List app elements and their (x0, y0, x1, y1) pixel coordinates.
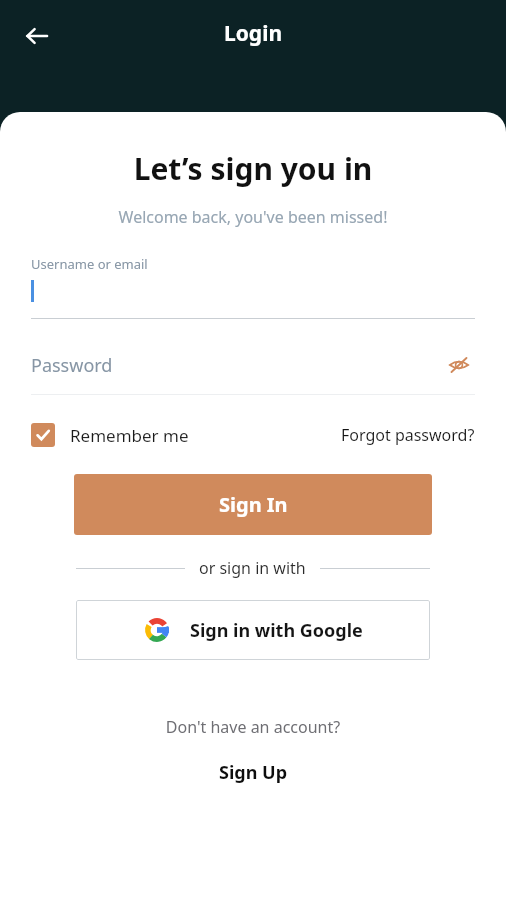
staticText: Sign in with Google (190, 618, 363, 643)
staticText: Welcome back, you've been missed! (0, 206, 506, 228)
button[interactable]: Back (14, 13, 60, 59)
button[interactable]: Remember me (31, 423, 189, 447)
staticText: Sign Up (219, 760, 288, 785)
button[interactable] (31, 280, 475, 304)
staticText: Let’s sign you in (0, 148, 506, 189)
button[interactable]: Sign Up (219, 760, 288, 785)
button[interactable]: Sign in with Google (76, 600, 430, 660)
button[interactable]: Show password (443, 349, 475, 381)
staticText: Forgot password? (341, 424, 475, 446)
staticText: Password (31, 353, 443, 378)
staticText: or sign in with (199, 557, 306, 579)
button[interactable]: Forgot password? (341, 424, 475, 446)
staticText: Sign In (219, 491, 288, 518)
staticText: Don't have an account? (0, 716, 506, 738)
staticText: Remember me (70, 424, 189, 447)
staticText: Login (224, 19, 283, 48)
staticText: Username or email (31, 255, 148, 273)
button[interactable]: Password (31, 349, 475, 381)
button[interactable]: Sign In (74, 474, 432, 535)
